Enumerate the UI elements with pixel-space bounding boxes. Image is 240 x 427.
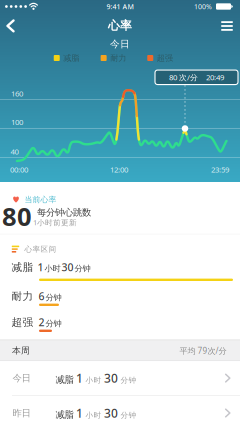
staticText: 30: [104, 405, 118, 421]
staticText: 100: [11, 117, 23, 127]
staticText: 100%: [194, 2, 212, 11]
staticText: 分钟: [45, 292, 61, 303]
staticText: 80: [2, 199, 32, 233]
button[interactable]: 昨日: [0, 396, 240, 427]
staticText: 1: [76, 370, 83, 386]
staticText: 9:41 AM: [106, 2, 133, 11]
staticText: 耐力: [110, 53, 126, 63]
staticText: 分钟: [74, 263, 90, 274]
staticText: 耐力: [11, 289, 33, 303]
button[interactable]: Menu: [217, 17, 237, 35]
staticText: 30: [104, 370, 118, 386]
staticText: 2: [38, 315, 44, 329]
staticText: 1: [37, 260, 43, 274]
staticText: 每分钟心跳数: [37, 207, 91, 218]
staticText: 超强: [157, 53, 173, 63]
staticText: 20:49: [206, 72, 224, 83]
button[interactable]: Back: [1, 16, 23, 36]
staticText: 昨日: [12, 407, 30, 419]
staticText: 30: [61, 260, 73, 274]
staticText: 减脂: [55, 374, 73, 385]
staticText: 分钟: [120, 375, 136, 385]
staticText: 平均 79次/分: [179, 345, 226, 356]
staticText: 分钟: [45, 318, 61, 329]
staticText: 1: [76, 405, 83, 421]
staticText: 分钟: [120, 410, 136, 420]
staticText: 减脂: [11, 260, 33, 274]
staticText: 1小时前更新: [33, 217, 77, 227]
staticText: 6: [38, 289, 44, 303]
staticText: 小时: [85, 375, 101, 385]
staticText: 心率区间: [24, 244, 56, 254]
staticText: 40: [10, 146, 18, 157]
staticText: 减脂: [55, 409, 73, 420]
staticText: 160: [11, 88, 23, 99]
staticText: 超强: [11, 315, 33, 329]
staticText: 12:00: [110, 164, 128, 175]
staticText: 今日: [110, 38, 130, 50]
staticText: 当前心率: [24, 194, 56, 204]
button[interactable]: 今日: [0, 361, 240, 395]
staticText: 今日: [12, 372, 30, 384]
staticText: 心率: [108, 18, 132, 33]
staticText: 小时: [44, 263, 60, 274]
staticText: 00:00: [10, 164, 28, 175]
staticText: 小时: [85, 410, 101, 420]
staticText: 80 次/分: [169, 72, 198, 83]
staticText: 23:59: [211, 164, 229, 175]
staticText: 减脂: [63, 53, 79, 63]
staticText: 本周: [12, 345, 30, 356]
